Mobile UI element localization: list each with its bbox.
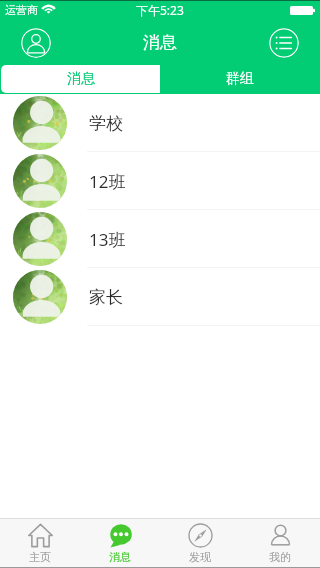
button[interactable]: 家长 [0,268,320,326]
staticText: 群组 [226,70,254,88]
button[interactable]: 发现 [160,519,240,567]
button[interactable]: Profile [21,28,51,58]
staticText: 发现 [189,550,211,564]
staticText: 主页 [29,550,51,564]
button[interactable]: 消息 [80,519,160,567]
staticText: 下午5:23 [136,2,184,18]
button[interactable]: 12班 [0,152,320,210]
staticText: 13班 [89,228,126,251]
button[interactable]: 主页 [0,519,80,567]
staticText: 运营商 [5,3,38,17]
staticText: 我的 [269,550,291,564]
staticText: 消息 [109,550,131,564]
staticText: 12班 [89,170,126,193]
button[interactable]: 学校 [0,94,320,152]
staticText: 消息 [143,32,177,53]
staticText: 学校 [89,113,123,134]
staticText: 消息 [67,70,95,88]
staticText: 家长 [89,287,123,308]
button[interactable]: 13班 [0,210,320,268]
button[interactable]: 我的 [240,519,320,567]
button[interactable]: 群组 [160,65,319,93]
button[interactable]: 消息 [1,65,160,93]
button[interactable]: Menu [269,28,299,58]
